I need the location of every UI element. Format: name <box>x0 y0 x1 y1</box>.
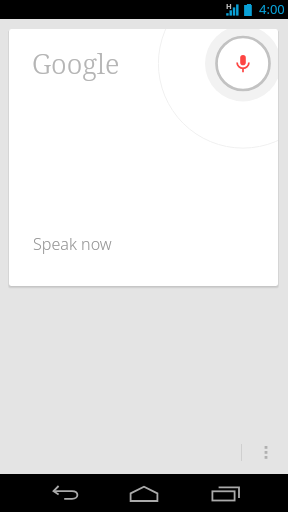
button[interactable]: More options <box>258 440 274 464</box>
staticText: Speak now <box>33 233 112 255</box>
button[interactable]: Home <box>120 474 168 512</box>
staticText: 4:00 <box>259 0 285 18</box>
staticText: H <box>226 1 232 11</box>
staticText: Google <box>32 44 120 82</box>
button[interactable]: Voice search <box>9 29 278 286</box>
button[interactable]: Back <box>43 474 91 512</box>
button[interactable]: Recent apps <box>202 474 250 512</box>
